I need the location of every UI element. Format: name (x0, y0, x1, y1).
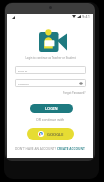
staticText: OR continue with (36, 117, 65, 122)
button[interactable]: LOGIN (30, 104, 73, 113)
staticText: Email ID (18, 69, 28, 72)
staticText: Password (18, 82, 29, 85)
staticText: GOOGLE (47, 132, 64, 137)
other: Show password (79, 82, 83, 85)
staticText: LOGIN (45, 106, 58, 111)
button[interactable]: GOOGLE (27, 128, 74, 140)
staticText: Login to continue as Teacher or Student (25, 56, 76, 60)
button[interactable]: Password (15, 79, 86, 87)
staticText: Forgot Password? (63, 91, 86, 95)
button[interactable]: Email ID (15, 66, 86, 74)
staticText: CREATE ACCOUNT (57, 147, 85, 151)
staticText: 9:41 (82, 14, 90, 19)
staticText: DON'T HAVE AN ACCOUNT? (15, 147, 57, 151)
button[interactable]: Forgot Password? (63, 91, 86, 95)
button[interactable]: CREATE ACCOUNT (57, 147, 85, 151)
